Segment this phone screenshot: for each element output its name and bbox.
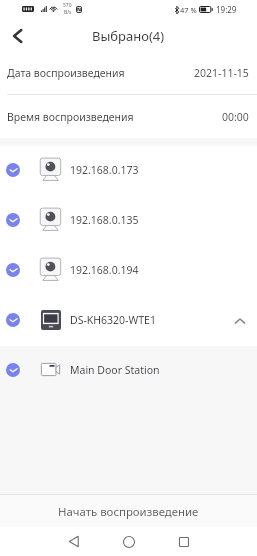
staticText: Выбрано(4) xyxy=(92,27,165,45)
button[interactable]: Main Door Station xyxy=(0,346,257,396)
button[interactable]: Recents xyxy=(156,527,211,556)
button[interactable]: 192.168.0.173 xyxy=(0,146,257,196)
staticText: Main Door Station xyxy=(70,363,160,377)
button[interactable]: Back xyxy=(46,527,101,556)
button[interactable]: Дата воспроизведения xyxy=(0,55,257,94)
staticText: 2021-11-15 xyxy=(194,66,249,80)
staticText: 570 xyxy=(63,2,72,9)
staticText: DS-KH6320-WTE1 xyxy=(70,313,156,327)
staticText: Время воспроизведения xyxy=(7,110,134,124)
staticText: 192.168.0.173 xyxy=(70,163,139,177)
staticText: 47 % xyxy=(180,5,197,15)
staticText: Начать воспроизведение xyxy=(58,504,199,520)
button[interactable]: DS-KH6320-WTE1 xyxy=(0,296,257,346)
staticText: 19:29 xyxy=(216,4,237,15)
button[interactable]: Начать воспроизведение xyxy=(0,494,257,527)
staticText: 00:00 xyxy=(222,110,249,124)
button[interactable]: 192.168.0.135 xyxy=(0,196,257,246)
button[interactable]: Collapse xyxy=(230,311,250,331)
staticText: Дата воспроизведения xyxy=(7,66,125,80)
button[interactable]: Home xyxy=(101,527,156,556)
button[interactable]: 192.168.0.194 xyxy=(0,246,257,296)
button[interactable]: Back xyxy=(3,22,31,50)
staticText: 192.168.0.135 xyxy=(70,213,139,227)
button[interactable]: Время воспроизведения xyxy=(0,95,257,138)
staticText: B/s xyxy=(64,9,72,16)
staticText: 192.168.0.194 xyxy=(70,263,139,277)
